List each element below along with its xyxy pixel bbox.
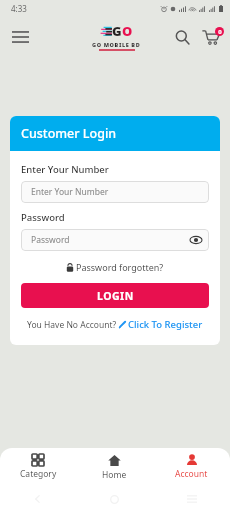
staticText: 0 (218, 28, 222, 36)
staticText: Click To Register (128, 318, 203, 331)
staticText: Enter Your Number (31, 186, 109, 198)
button[interactable]: Cart, 0 items (197, 23, 225, 51)
staticText: 4:33 (11, 3, 27, 14)
button[interactable]: Home (76, 448, 153, 486)
button[interactable]: Click To Register (118, 318, 204, 331)
staticText: Password forgotten? (76, 261, 164, 273)
button[interactable]: Search (169, 24, 195, 50)
button[interactable]: LOGIN (21, 283, 209, 308)
staticText: G (112, 22, 122, 40)
staticText: Home (102, 469, 127, 481)
button[interactable]: Show password (189, 233, 203, 247)
button[interactable]: Password forgotten? (63, 260, 167, 274)
staticText: You Have No Account? (27, 319, 117, 331)
button[interactable]: Account (153, 448, 230, 486)
button[interactable]: Menu (6, 23, 34, 51)
button[interactable]: Password (21, 229, 209, 251)
staticText: Enter Your Number (21, 163, 109, 176)
staticText: Password (31, 234, 70, 246)
staticText: Password (21, 211, 65, 224)
button[interactable]: Enter Your Number (21, 181, 209, 203)
staticText: Category (20, 468, 57, 480)
staticText: O (122, 22, 133, 40)
staticText: LOGIN (97, 289, 134, 303)
staticText: Customer Login (21, 125, 117, 142)
staticText: Account (175, 468, 208, 480)
button[interactable]: Category (0, 448, 76, 486)
staticText: GO MOBILE BD (92, 41, 141, 48)
